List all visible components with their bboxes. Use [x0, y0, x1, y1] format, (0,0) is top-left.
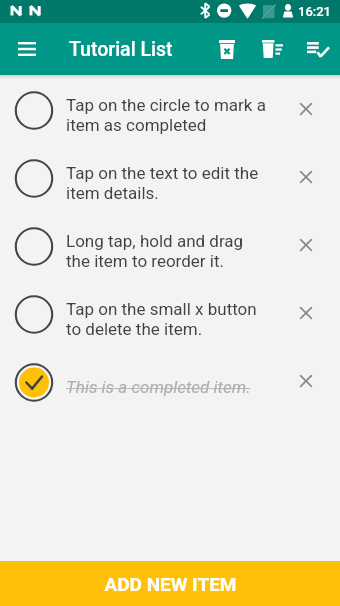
button[interactable]: Toggle item completed — [15, 226, 53, 264]
button[interactable]: Delete item — [286, 225, 326, 265]
button[interactable]: Delete item — [286, 293, 326, 333]
staticText: Tap on the small x button to delete the … — [66, 299, 257, 339]
button[interactable]: Toggle item completed — [0, 211, 340, 279]
staticText: 16:21 — [298, 4, 331, 19]
button[interactable]: Toggle item completed — [0, 75, 340, 143]
button[interactable]: Delete completed items — [205, 27, 249, 71]
staticText: This is a completed item. — [66, 377, 251, 397]
staticText: Tap on the circle to mark a item as comp… — [66, 95, 266, 135]
button[interactable]: Open navigation menu — [5, 27, 48, 70]
button[interactable]: Delete item — [286, 89, 326, 129]
button[interactable]: Toggle item completed — [0, 347, 340, 415]
button[interactable]: Mark all items complete — [296, 27, 340, 71]
staticText: Long tap, hold and drag the item to reor… — [66, 231, 244, 271]
staticText: Tutorial List — [69, 38, 173, 61]
staticText: Tap on the text to edit the item details… — [66, 163, 259, 203]
button[interactable]: Toggle item completed — [0, 279, 340, 347]
button[interactable]: Toggle item completed — [15, 362, 53, 400]
button[interactable]: Toggle item completed — [15, 90, 53, 128]
staticText: ADD NEW ITEM — [104, 573, 237, 595]
button[interactable]: Delete all items — [250, 27, 294, 71]
button[interactable]: Toggle item completed — [15, 158, 53, 196]
button[interactable]: ADD NEW ITEM — [0, 561, 340, 606]
button[interactable]: Delete item — [286, 361, 326, 401]
button[interactable]: Toggle item completed — [0, 143, 340, 211]
button[interactable]: Delete item — [286, 157, 326, 197]
button[interactable]: Toggle item completed — [15, 294, 53, 332]
